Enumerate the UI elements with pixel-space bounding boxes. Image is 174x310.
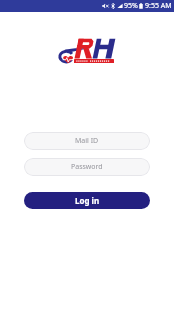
button[interactable]: Password: [24, 158, 150, 176]
staticText: 95%: [124, 1, 138, 11]
staticText: Password: [71, 162, 103, 172]
staticText: 9:55 AM: [145, 1, 172, 11]
button[interactable]: Log in: [24, 192, 150, 209]
staticText: Mail ID: [75, 136, 99, 146]
button[interactable]: Mail ID: [24, 132, 150, 150]
staticText: Log in: [75, 195, 100, 206]
